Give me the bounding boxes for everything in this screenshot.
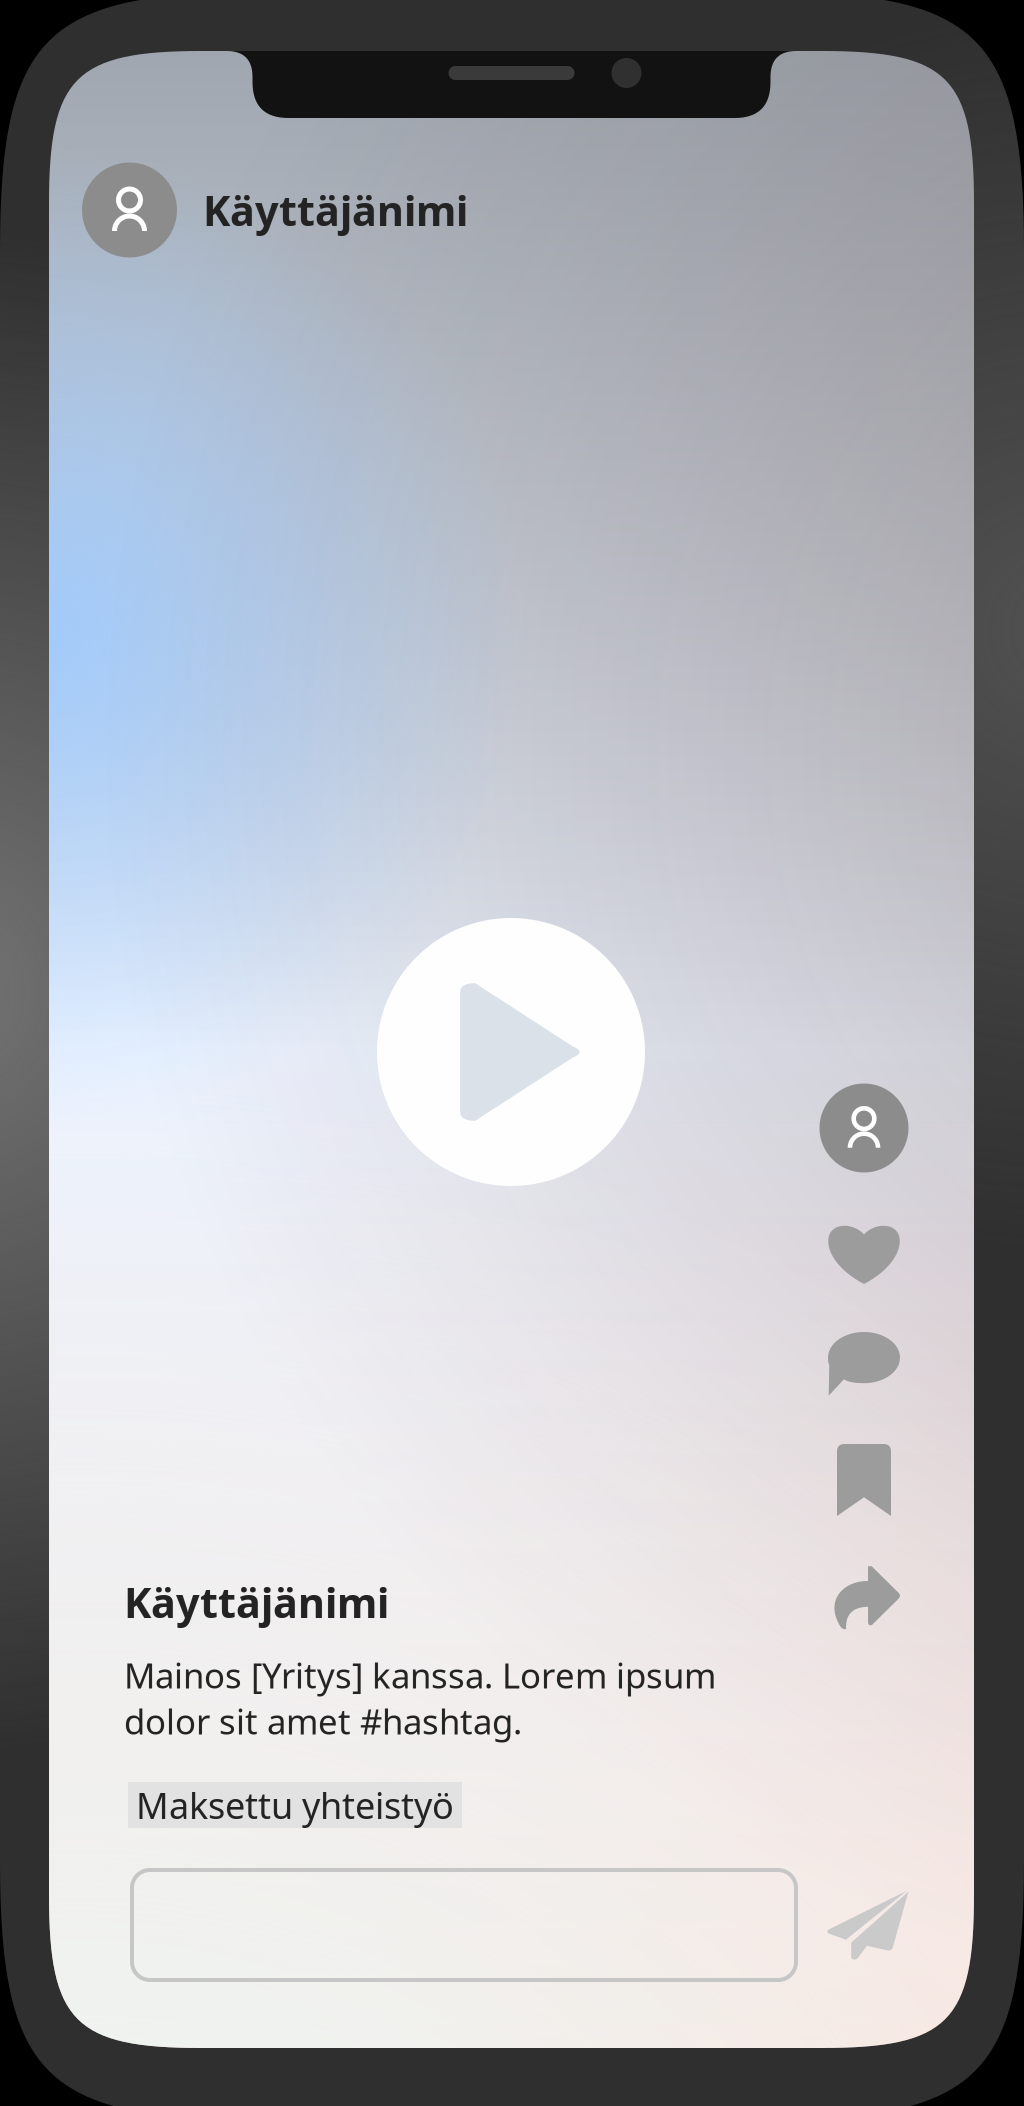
staticText: Mainos [Yritys] kanssa. Lorem ipsum dolo…	[124, 1652, 716, 1744]
button[interactable]: Maksettu yhteistyö	[128, 1782, 462, 1828]
button[interactable]: Profile	[819, 1083, 908, 1172]
button[interactable]: Käyttäjänimi	[82, 162, 623, 257]
staticText: Käyttäjänimi	[124, 1575, 389, 1629]
staticText: Maksettu yhteistyö	[136, 1781, 454, 1829]
staticText: Käyttäjänimi	[203, 183, 468, 237]
button[interactable]: Like	[819, 1209, 908, 1295]
button[interactable]: Save	[819, 1437, 908, 1523]
button[interactable]: Comment	[819, 1321, 908, 1407]
button[interactable]: Send	[822, 1880, 912, 1970]
button[interactable]: Share	[819, 1554, 908, 1640]
